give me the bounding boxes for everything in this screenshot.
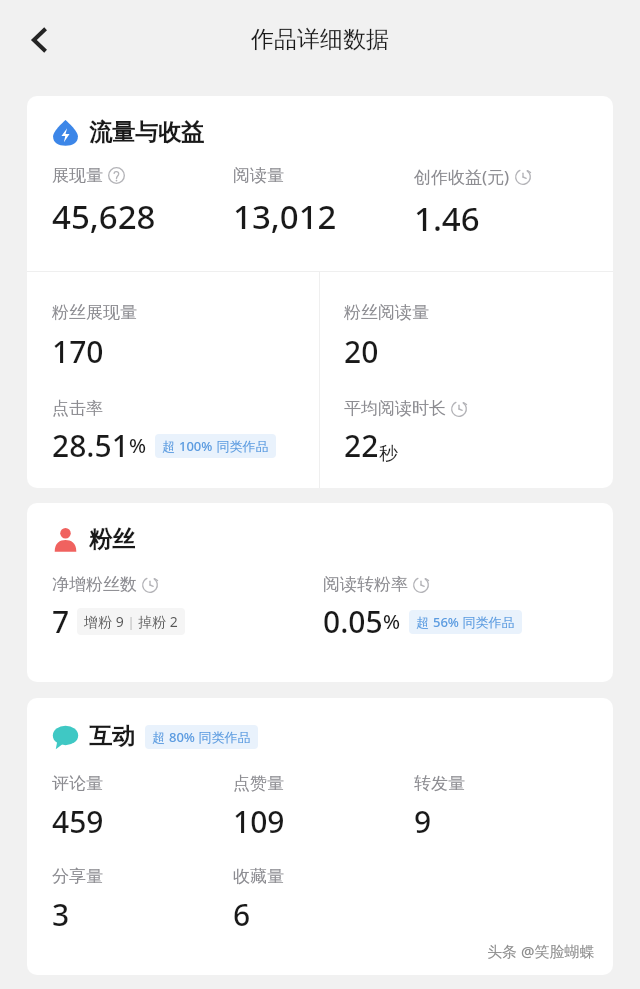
button[interactable]: 超: [416, 613, 515, 631]
staticText: 净增粉丝数: [52, 574, 137, 595]
staticText: 13,012: [233, 194, 337, 239]
staticText: %: [129, 432, 147, 459]
staticText: 展现量: [52, 165, 103, 186]
staticText: 分享量: [52, 866, 103, 887]
staticText: 粉丝阅读量: [344, 302, 429, 323]
staticText: 459: [52, 801, 104, 842]
button[interactable]: 流量与收益: [52, 118, 204, 147]
staticText: 0.05: [323, 601, 383, 642]
button[interactable]: Back: [12, 12, 68, 68]
staticText: %: [383, 608, 401, 635]
staticText: 增粉 9: [84, 612, 124, 631]
staticText: 超: [152, 728, 169, 746]
staticText: 6: [233, 894, 251, 935]
staticText: 收藏量: [233, 866, 284, 887]
staticText: 100%: [179, 437, 213, 455]
staticText: 同类作品: [195, 728, 251, 746]
staticText: 170: [52, 331, 104, 372]
staticText: 109: [233, 801, 285, 842]
staticText: 粉丝: [89, 525, 135, 554]
staticText: 9: [414, 801, 432, 842]
button[interactable]: 增粉 9: [84, 612, 178, 631]
staticText: 同类作品: [213, 437, 269, 455]
staticText: 互动: [89, 722, 135, 751]
staticText: 20: [344, 331, 379, 372]
button[interactable]: 互动: [52, 722, 258, 751]
staticText: 同类作品: [459, 613, 515, 631]
staticText: |: [124, 613, 138, 631]
staticText: 阅读量: [233, 165, 284, 186]
button[interactable]: 粉丝: [52, 525, 135, 554]
staticText: 平均阅读时长: [344, 398, 446, 419]
staticText: 80%: [169, 728, 195, 746]
staticText: 掉粉 2: [138, 612, 178, 631]
staticText: 28.51: [52, 425, 129, 466]
staticText: 1.46: [414, 196, 480, 241]
staticText: 阅读转粉率: [323, 574, 408, 595]
staticText: 作品详细数据: [251, 25, 389, 54]
staticText: 22: [344, 425, 379, 466]
staticText: 超: [162, 437, 179, 455]
staticText: 创作收益(元): [414, 165, 510, 188]
staticText: 评论量: [52, 773, 103, 794]
staticText: 转发量: [414, 773, 465, 794]
staticText: 45,628: [52, 194, 156, 239]
staticText: 7: [52, 601, 70, 642]
staticText: 56%: [433, 613, 459, 631]
staticText: 头条 @笑脸蝴蝶: [487, 941, 595, 961]
button[interactable]: 超: [162, 437, 269, 455]
staticText: 流量与收益: [89, 118, 204, 147]
staticText: 3: [52, 894, 70, 935]
staticText: 超: [416, 613, 433, 631]
staticText: 秒: [379, 442, 398, 466]
button[interactable]: 超: [152, 728, 251, 746]
staticText: 点击率: [52, 398, 103, 419]
staticText: 粉丝展现量: [52, 302, 137, 323]
staticText: 点赞量: [233, 773, 284, 794]
